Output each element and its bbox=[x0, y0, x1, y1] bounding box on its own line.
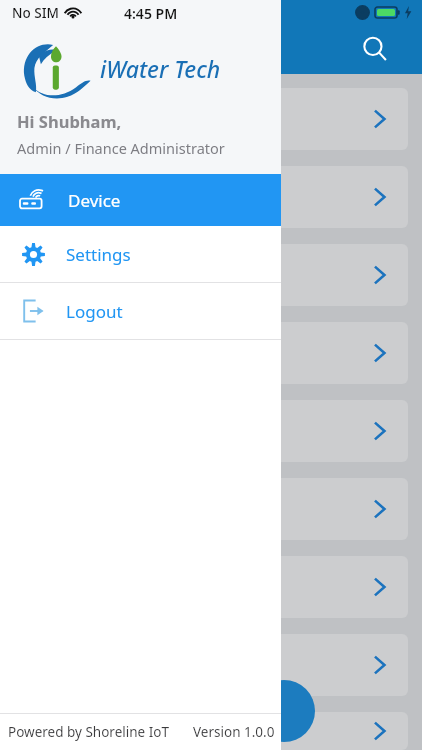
button[interactable] bbox=[8, 322, 408, 384]
button[interactable]: Settings bbox=[0, 226, 281, 282]
button[interactable]: Device bbox=[0, 174, 281, 226]
staticText: iWater Tech bbox=[100, 53, 221, 84]
staticText: Settings bbox=[66, 243, 131, 266]
button[interactable] bbox=[8, 400, 408, 462]
button[interactable] bbox=[8, 244, 408, 306]
staticText: Logout bbox=[66, 300, 123, 323]
staticText: No SIM bbox=[12, 4, 59, 22]
staticText: Powered by Shoreline IoT bbox=[8, 723, 169, 741]
staticText: Admin / Finance Administrator bbox=[17, 138, 225, 158]
staticText: 4:45 PM bbox=[124, 4, 178, 23]
button[interactable]: Add device bbox=[253, 680, 315, 742]
button[interactable]: Search bbox=[358, 32, 392, 66]
button[interactable]: Logout bbox=[0, 283, 281, 339]
button[interactable] bbox=[8, 88, 408, 150]
staticText: Version 1.0.0 bbox=[193, 723, 275, 741]
button[interactable] bbox=[8, 166, 408, 228]
button[interactable] bbox=[8, 556, 408, 618]
button[interactable] bbox=[8, 478, 408, 540]
button[interactable] bbox=[8, 634, 408, 696]
staticText: Hi Shubham, bbox=[17, 110, 122, 132]
staticText: Device bbox=[68, 189, 121, 212]
button[interactable] bbox=[8, 712, 408, 750]
